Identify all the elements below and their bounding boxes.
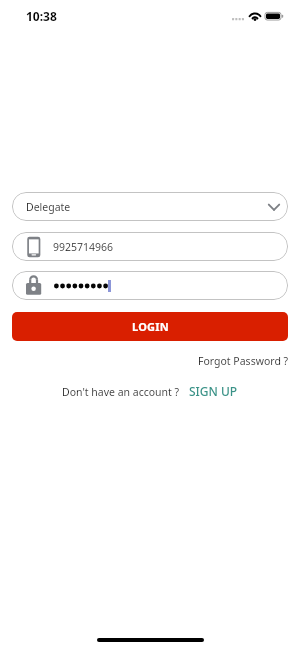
button[interactable]: Delegate [12, 192, 288, 221]
other: Open role dropdown [266, 199, 282, 215]
other: Password [22, 275, 42, 297]
staticText: 10:38 [26, 8, 57, 24]
staticText: Don't have an account ? [62, 385, 180, 399]
button[interactable]: LOGIN [12, 312, 288, 341]
button[interactable]: SIGN UP [189, 383, 238, 399]
staticText: LOGIN [132, 319, 169, 334]
staticText: Delegate [26, 200, 71, 214]
other: Phone number [22, 236, 42, 258]
staticText: 9925714966 [53, 240, 114, 254]
button[interactable]: Forgot Password ? [198, 352, 300, 370]
button[interactable]: Password [12, 271, 288, 300]
button[interactable]: Phone number [12, 232, 288, 261]
